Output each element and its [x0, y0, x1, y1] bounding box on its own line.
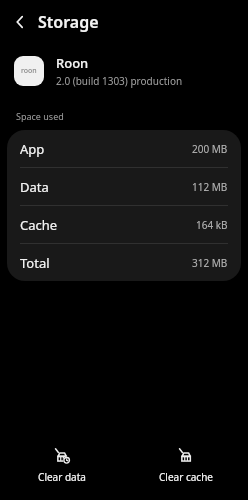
- staticText: 164 kB: [196, 218, 228, 232]
- button[interactable]: Data: [7, 168, 241, 205]
- staticText: roon: [21, 66, 37, 76]
- staticText: App: [20, 140, 45, 158]
- staticText: 2.0 (build 1303) production: [56, 74, 183, 88]
- staticText: Clear cache: [159, 470, 213, 484]
- button[interactable]: Back: [6, 8, 34, 36]
- staticText: Clear data: [38, 470, 86, 484]
- button[interactable]: Clear cache: [124, 443, 248, 488]
- staticText: Roon: [56, 54, 89, 72]
- staticText: Data: [20, 178, 49, 196]
- button[interactable]: App: [7, 130, 241, 167]
- staticText: Total: [20, 254, 50, 272]
- staticText: 200 MB: [192, 142, 228, 156]
- staticText: Storage: [38, 11, 99, 33]
- button[interactable]: Cache: [7, 206, 241, 243]
- staticText: 312 MB: [192, 256, 228, 270]
- staticText: 112 MB: [192, 180, 228, 194]
- staticText: Space used: [16, 110, 64, 122]
- button[interactable]: Clear data: [0, 443, 124, 488]
- staticText: Cache: [20, 216, 58, 234]
- button[interactable]: Total: [7, 244, 241, 281]
